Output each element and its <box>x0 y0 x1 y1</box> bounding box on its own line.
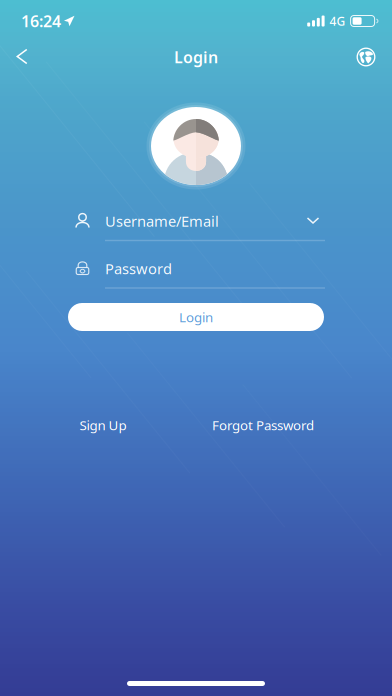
button[interactable]: Forgot Password <box>212 412 314 438</box>
staticText: Password <box>105 259 172 278</box>
staticText: Sign Up <box>79 416 126 434</box>
staticText: 4G <box>330 13 346 29</box>
staticText: Login <box>179 308 213 326</box>
button[interactable]: Username/Email <box>75 204 325 244</box>
button[interactable]: Back <box>0 34 44 78</box>
button[interactable]: Password <box>75 251 325 291</box>
staticText: Forgot Password <box>212 416 314 434</box>
button[interactable]: Login <box>68 303 324 331</box>
button[interactable]: Sign Up <box>79 412 126 438</box>
staticText: Login <box>174 46 218 68</box>
button[interactable]: Language <box>344 35 388 79</box>
staticText: Username/Email <box>105 211 219 231</box>
staticText: 16:24 <box>21 10 61 32</box>
